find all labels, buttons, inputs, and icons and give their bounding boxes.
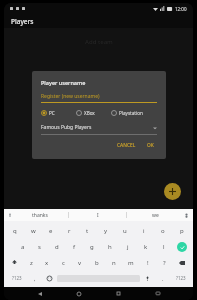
staticText: h <box>108 243 112 251</box>
staticText: c <box>62 259 65 267</box>
button[interactable]: c <box>55 256 71 269</box>
button[interactable]: g <box>83 240 101 253</box>
staticText: q <box>13 227 17 235</box>
staticText: o <box>161 227 165 235</box>
staticText: s <box>38 243 41 251</box>
staticText: Player username <box>41 79 86 86</box>
button[interactable]: a <box>14 240 31 253</box>
button[interactable]: CANCEL <box>114 140 139 151</box>
button[interactable]: Famous Pubg Players <box>41 122 157 133</box>
button[interactable]: Keyboard <box>153 289 162 298</box>
button[interactable]: ?123 <box>6 272 27 284</box>
staticText: XBox <box>84 110 95 116</box>
button[interactable]: OK <box>144 140 157 151</box>
staticText: j <box>127 243 129 251</box>
staticText: l <box>163 243 165 251</box>
staticText: f <box>73 243 76 251</box>
button[interactable]: r <box>60 224 78 237</box>
button[interactable]: . <box>155 272 170 284</box>
staticText: CANCEL <box>117 142 136 149</box>
staticText: OK <box>147 142 154 149</box>
staticText: ! <box>147 259 149 267</box>
button[interactable]: Shift <box>6 256 23 269</box>
button[interactable]: i <box>134 224 153 237</box>
button[interactable]: Home <box>74 289 83 298</box>
staticText: b <box>95 259 99 267</box>
staticText: ? <box>163 259 166 267</box>
button[interactable]: Back <box>35 289 44 298</box>
button[interactable]: s <box>31 240 48 253</box>
button[interactable]: Emoji <box>42 272 57 284</box>
staticText: PC <box>49 110 55 116</box>
staticText: Register (new username) <box>41 93 100 100</box>
button[interactable]: Playstation <box>111 109 157 117</box>
button[interactable]: t <box>78 224 96 237</box>
button[interactable]: Voice input <box>140 272 155 284</box>
button[interactable]: b <box>88 256 105 269</box>
button[interactable]: j <box>119 240 137 253</box>
button[interactable]: x <box>39 256 55 269</box>
staticText: w <box>31 227 36 235</box>
staticText: ?123 <box>12 275 22 281</box>
button[interactable]: v <box>71 256 88 269</box>
staticText: Add team <box>85 38 113 46</box>
staticText: ?123 <box>176 275 186 281</box>
button[interactable]: q <box>6 224 24 237</box>
button[interactable]: , <box>27 272 42 284</box>
staticText: 12:00 <box>175 6 187 12</box>
button[interactable]: PC <box>41 109 76 117</box>
staticText: Players <box>11 17 34 26</box>
staticText: m <box>128 259 134 267</box>
button[interactable]: Add player <box>164 183 181 200</box>
staticText: Famous Pubg Players <box>41 124 153 131</box>
button[interactable]: k <box>137 240 155 253</box>
button[interactable]: h <box>101 240 119 253</box>
button[interactable]: e <box>42 224 60 237</box>
button[interactable]: m <box>122 256 139 269</box>
button[interactable]: n <box>105 256 122 269</box>
button[interactable]: o <box>153 224 172 237</box>
button[interactable]: XBox <box>76 109 111 117</box>
button[interactable]: Backspace <box>173 256 191 269</box>
staticText: e <box>49 227 53 235</box>
staticText: y <box>104 227 108 235</box>
staticText: Playstation <box>119 110 143 116</box>
button[interactable]: u <box>115 224 134 237</box>
button[interactable]: p <box>172 224 191 237</box>
staticText: d <box>55 243 59 251</box>
staticText: t <box>86 227 89 235</box>
staticText: r <box>68 227 71 235</box>
staticText: k <box>144 243 148 251</box>
button[interactable]: f <box>65 240 83 253</box>
staticText: a <box>21 243 25 251</box>
button[interactable]: ?123 <box>170 272 191 284</box>
staticText: , <box>34 275 36 282</box>
staticText: p <box>180 227 184 235</box>
button[interactable]: y <box>96 224 115 237</box>
button[interactable]: Enter <box>173 240 191 253</box>
staticText: z <box>30 259 33 267</box>
button[interactable]: ! <box>139 256 156 269</box>
staticText: g <box>90 243 94 251</box>
button[interactable]: Recents <box>114 289 123 298</box>
staticText: i <box>143 227 145 235</box>
button[interactable]: ? <box>156 256 173 269</box>
staticText: x <box>45 259 49 267</box>
staticText: n <box>112 259 116 267</box>
staticText: v <box>78 259 82 267</box>
staticText: u <box>123 227 127 235</box>
staticText: we <box>152 212 159 219</box>
button[interactable]: d <box>48 240 65 253</box>
button[interactable]: z <box>23 256 39 269</box>
button[interactable]: l <box>155 240 173 253</box>
staticText: thanks <box>32 212 48 219</box>
staticText: . <box>162 275 164 282</box>
staticText: I <box>97 212 99 219</box>
button[interactable]: w <box>24 224 42 237</box>
